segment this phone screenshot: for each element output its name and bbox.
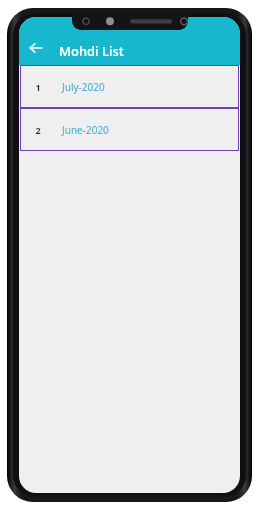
staticText: 1 <box>35 81 41 93</box>
button[interactable]: 1 <box>20 65 239 108</box>
staticText: Mohdi List <box>59 42 124 60</box>
button[interactable]: Back <box>23 35 49 61</box>
staticText: July-2020 <box>62 80 105 94</box>
staticText: 2 <box>35 124 41 136</box>
button[interactable]: 2 <box>20 108 239 151</box>
staticText: June-2020 <box>62 123 109 137</box>
